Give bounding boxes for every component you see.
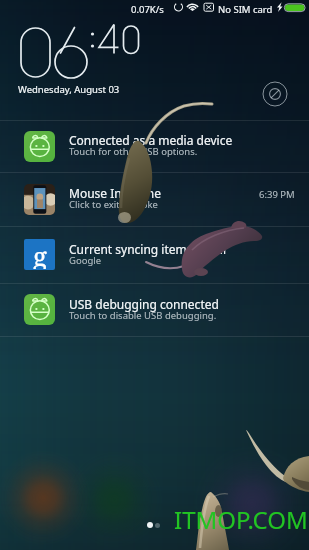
staticText: ITMOP.COM — [174, 503, 308, 536]
staticText: Click to exit the joke — [69, 198, 158, 211]
staticText: Touch to disable USB debugging. — [69, 309, 217, 322]
staticText: Current syncing item: Gmail — [69, 241, 226, 257]
staticText: Google — [69, 254, 102, 267]
staticText: Mouse In Phone — [69, 185, 161, 201]
staticText: USB debugging connected — [69, 296, 219, 312]
staticText: Touch for other USB options. — [69, 145, 198, 158]
staticText: g — [33, 239, 47, 269]
staticText: Connected as a media device — [69, 132, 233, 148]
staticText: 0.07K/s — [131, 3, 164, 16]
button[interactable]: Connected as a media device — [0, 121, 309, 173]
button[interactable]: Mouse In Phone — [0, 173, 309, 227]
staticText: Wednesday, August 03 — [18, 83, 120, 96]
button[interactable]: Do not disturb — [261, 80, 289, 108]
button[interactable]: g — [0, 227, 309, 284]
button[interactable]: USB debugging connected — [0, 284, 309, 337]
staticText: No SIM card — [218, 3, 273, 16]
staticText: 6:39 PM — [259, 188, 295, 201]
